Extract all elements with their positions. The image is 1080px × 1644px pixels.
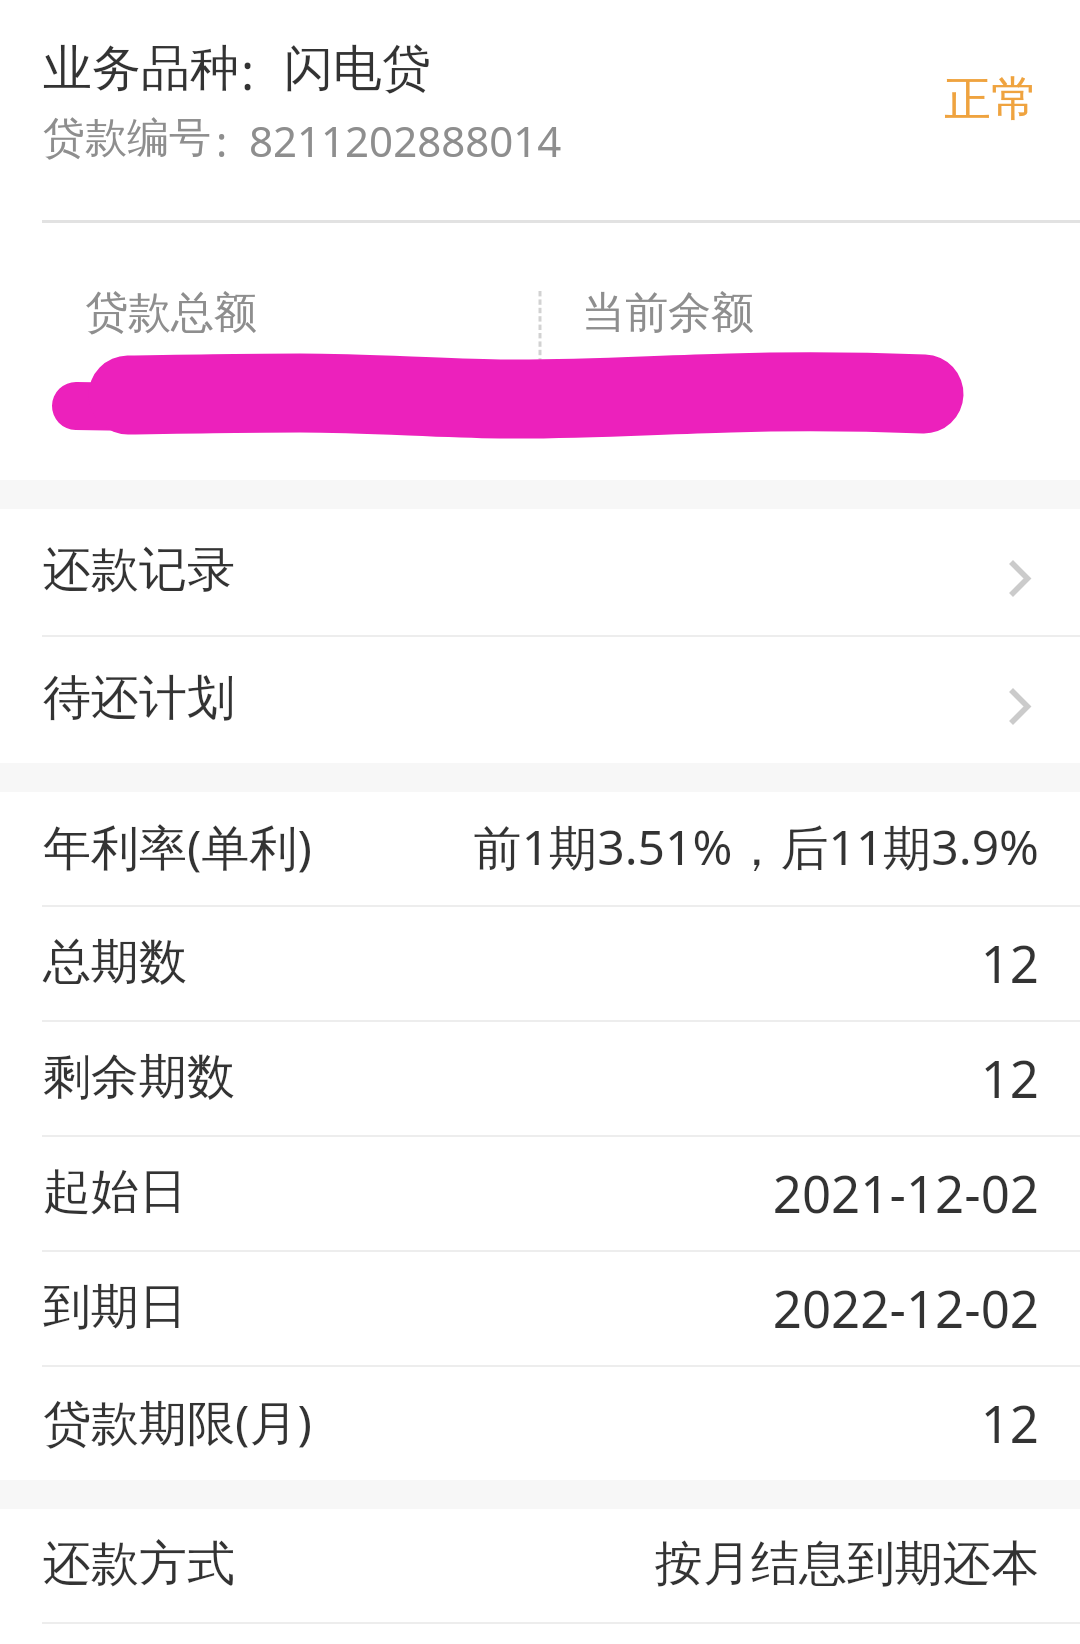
staticText: : (216, 112, 228, 169)
staticText: 总期数 (43, 932, 187, 992)
staticText: 前1期3.51%，后11期3.9% (473, 814, 1039, 880)
button[interactable]: 待还计划 (0, 637, 1080, 763)
other: Open 还款记录 (1010, 561, 1031, 596)
staticText: 贷款编号 (43, 112, 211, 165)
staticText: 2022-12-02 (772, 1273, 1039, 1342)
staticText: 当前余额 (582, 286, 754, 340)
staticText: 12 (980, 1388, 1039, 1457)
staticText: : (241, 38, 255, 105)
staticText: 还款记录 (43, 540, 235, 600)
other: Open 待还计划 (1010, 689, 1031, 724)
staticText: 按月结息到期还本 (655, 1534, 1039, 1594)
staticText: 12 (980, 1043, 1039, 1112)
staticText: 正常 (944, 70, 1038, 129)
staticText: 待还计划 (43, 668, 235, 728)
staticText: 贷款总额 (85, 286, 257, 340)
button[interactable]: 还款记录 (0, 509, 1080, 635)
staticText: 年利率(单利) (43, 814, 312, 880)
staticText: 贷款期限(月) (43, 1389, 312, 1455)
staticText: 剩余期数 (43, 1047, 235, 1107)
staticText: 12 (980, 928, 1039, 997)
staticText: 起始日 (43, 1162, 187, 1222)
staticText: 8211202888014 (249, 112, 562, 169)
staticText: 2021-12-02 (772, 1158, 1039, 1227)
staticText: 闪电贷 (284, 38, 431, 100)
staticText: 到期日 (43, 1277, 187, 1337)
staticText: 业务品种 (43, 38, 239, 100)
staticText: 还款方式 (43, 1534, 235, 1594)
